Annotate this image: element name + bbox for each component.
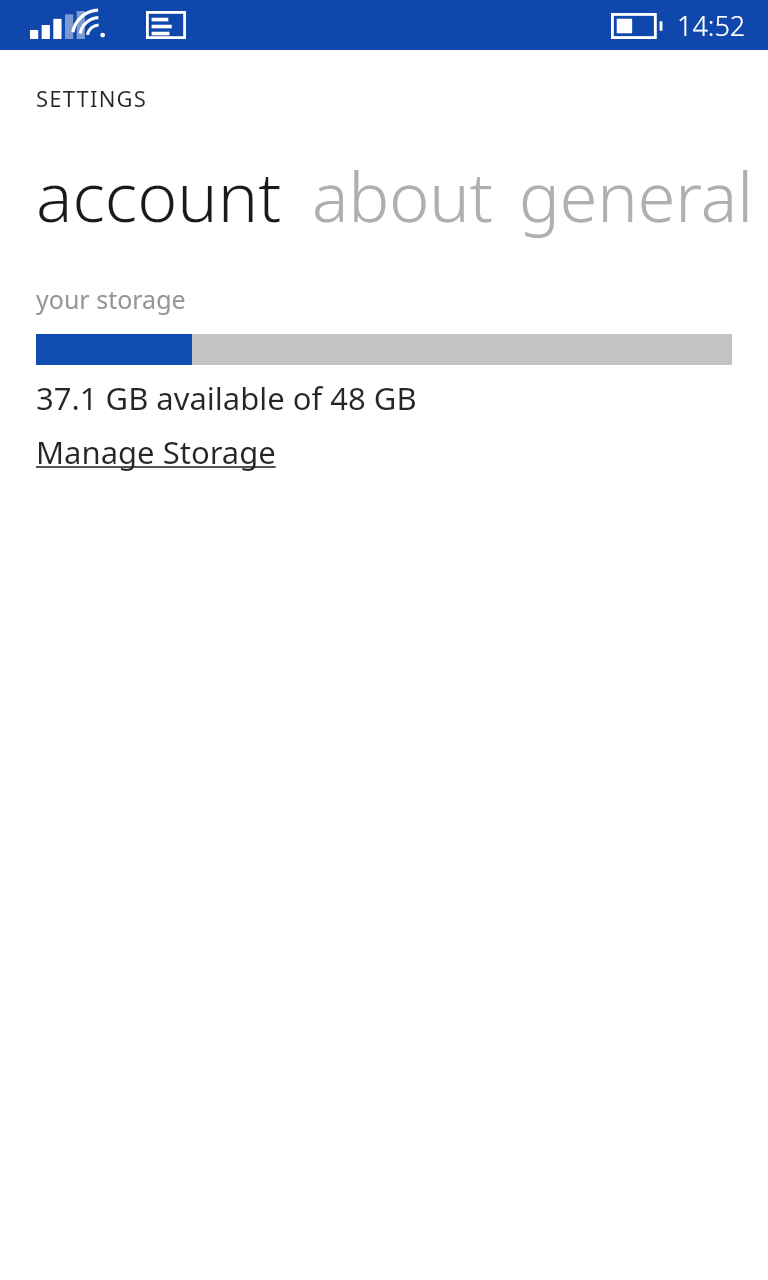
button[interactable]: account [36, 149, 282, 242]
staticText: SETTINGS [36, 83, 148, 113]
staticText: 37.1 GB available of 48 GB [36, 377, 417, 419]
button[interactable]: general [519, 149, 753, 242]
button[interactable]: about [312, 149, 493, 242]
button[interactable]: Manage Storage [36, 431, 276, 473]
staticText: Manage Storage [36, 431, 276, 473]
staticText: 14:52 [677, 7, 746, 44]
staticText: your storage [36, 282, 186, 316]
